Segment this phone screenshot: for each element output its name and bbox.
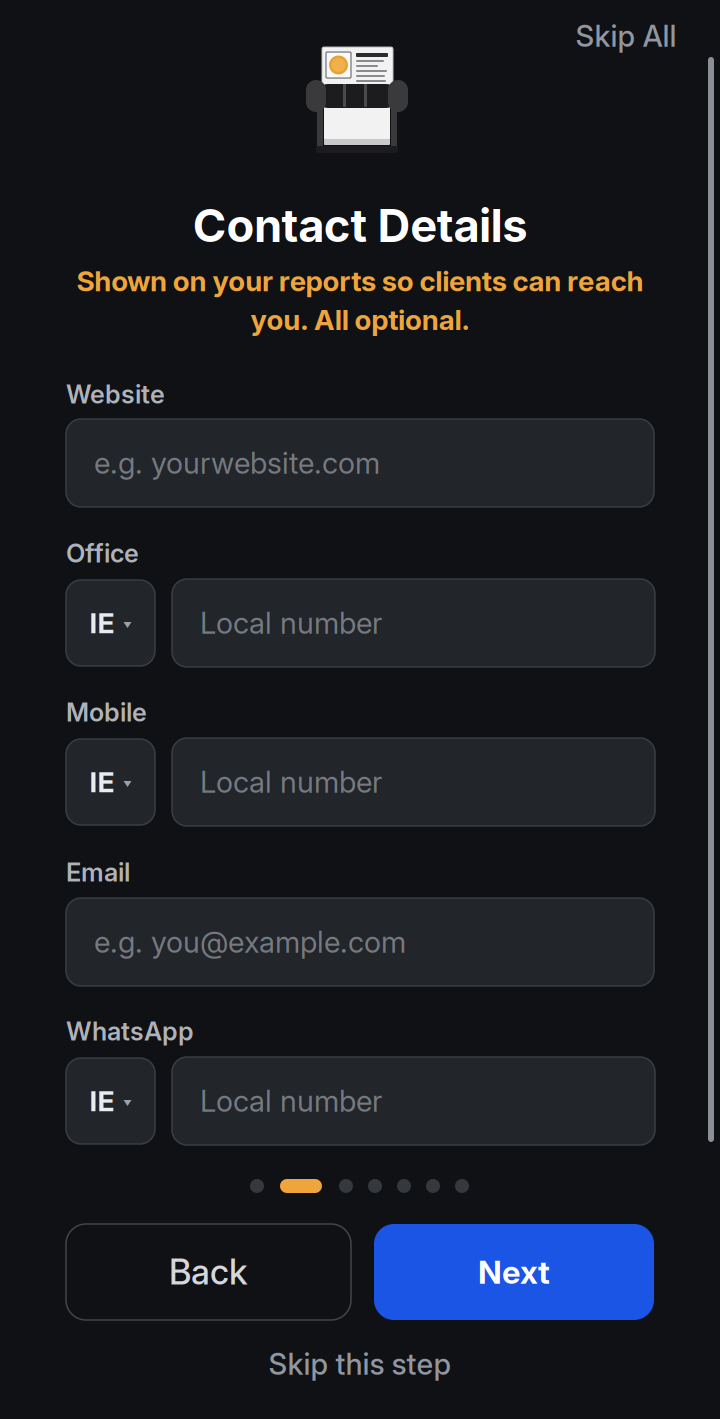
staticText: e.g. yourwebsite.com — [94, 445, 380, 481]
staticText: Mobile — [66, 697, 147, 728]
staticText: Next — [478, 1253, 550, 1291]
button[interactable]: Skip All — [556, 12, 696, 60]
staticText: Local number — [200, 1083, 382, 1119]
staticText: Website — [66, 379, 165, 410]
staticText: Skip this step — [268, 1346, 451, 1382]
staticText: IE — [89, 606, 114, 640]
staticText: IE — [89, 765, 114, 799]
button[interactable]: Next — [374, 1224, 654, 1320]
button[interactable]: Back — [66, 1224, 351, 1320]
button[interactable]: e.g. you@example.com — [66, 898, 654, 986]
button[interactable]: e.g. yourwebsite.com — [66, 419, 654, 507]
button[interactable]: Local number — [172, 738, 655, 826]
staticText: WhatsApp — [66, 1016, 194, 1047]
button[interactable]: Local number — [172, 1057, 655, 1145]
staticText: Email — [66, 857, 130, 888]
staticText: IE — [89, 1084, 114, 1118]
button[interactable]: Local number — [172, 579, 655, 667]
staticText: Shown on your reports so clients can rea… — [76, 264, 644, 298]
staticText: Office — [66, 538, 139, 569]
staticText: Local number — [200, 605, 382, 641]
staticText: Contact Details — [193, 198, 527, 253]
button[interactable]: Country code IE — [66, 1058, 155, 1144]
staticText: you. All optional. — [250, 303, 469, 337]
staticText: Skip All — [575, 18, 676, 54]
button[interactable]: Country code IE — [66, 580, 155, 666]
button[interactable]: Country code IE — [66, 739, 155, 825]
staticText: Local number — [200, 764, 382, 800]
button[interactable]: Skip this step — [268, 1340, 451, 1388]
staticText: e.g. you@example.com — [94, 924, 406, 960]
staticText: Back — [169, 1251, 248, 1293]
